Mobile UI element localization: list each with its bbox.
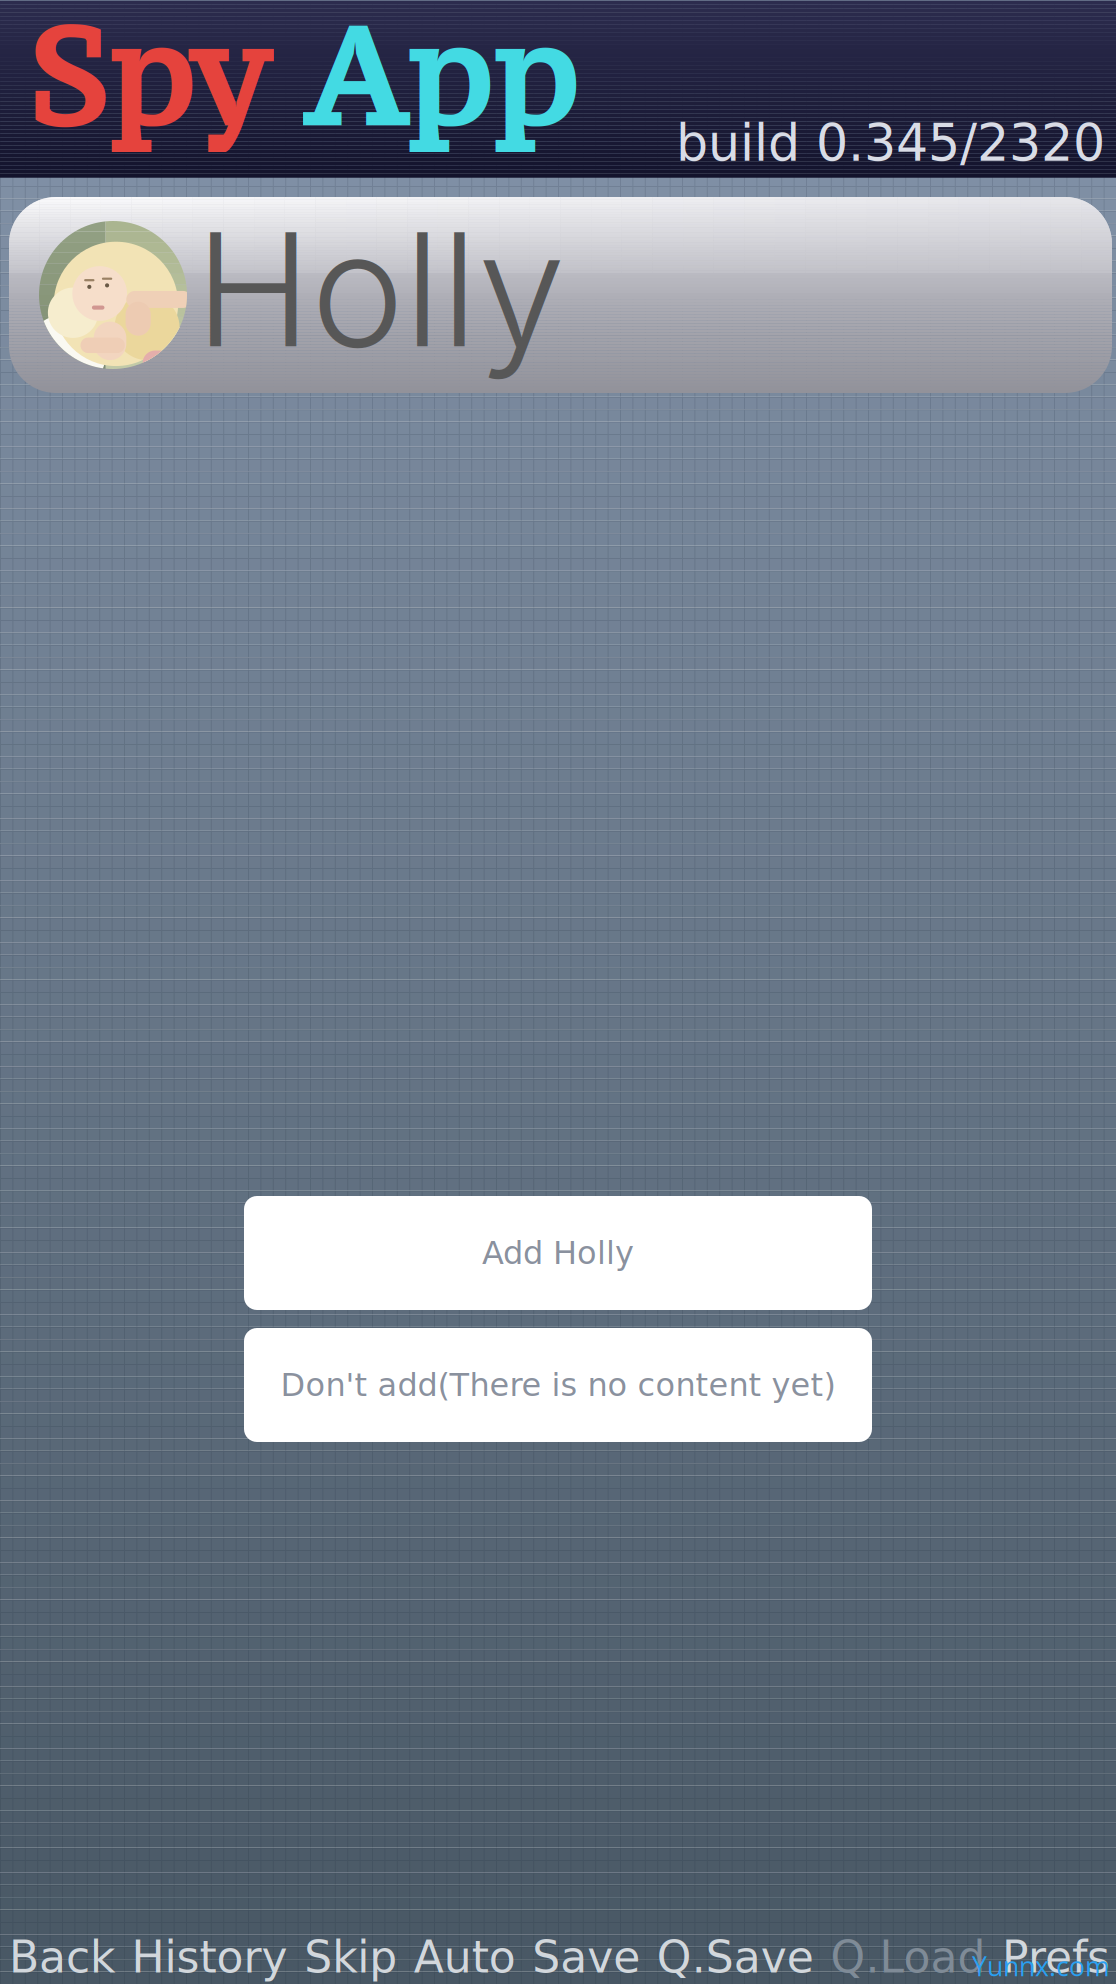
staticText: Add Holly — [482, 1234, 634, 1272]
staticText: Don't add(There is no content yet) — [280, 1366, 835, 1404]
button[interactable]: Don't add(There is no content yet) — [244, 1328, 872, 1442]
button[interactable]: Q.Load — [830, 1932, 985, 1983]
staticText: build 0.345/2320 — [676, 114, 1105, 173]
staticText: Back — [9, 1932, 115, 1983]
staticText: Auto — [414, 1932, 516, 1983]
staticText: Holly — [195, 194, 566, 384]
button[interactable]: History — [132, 1932, 288, 1983]
staticText: App — [303, 0, 577, 164]
button[interactable]: Back — [9, 1932, 115, 1983]
staticText: Prefs — [1002, 1932, 1110, 1983]
staticText: History — [132, 1932, 288, 1983]
button[interactable]: Add Holly — [244, 1196, 872, 1310]
button[interactable]: Auto — [414, 1932, 516, 1983]
staticText: Q.Save — [657, 1932, 814, 1983]
button[interactable]: Save — [532, 1932, 640, 1983]
button[interactable]: Prefs — [1002, 1932, 1110, 1983]
staticText: Skip — [304, 1932, 397, 1983]
staticText: Yunnx.com — [972, 1948, 1110, 1984]
staticText: Save — [532, 1932, 640, 1983]
button[interactable]: Skip — [304, 1932, 397, 1983]
staticText: Q.Load — [830, 1932, 985, 1983]
button[interactable]: Q.Save — [657, 1932, 814, 1983]
staticText: Spy — [27, 0, 303, 164]
